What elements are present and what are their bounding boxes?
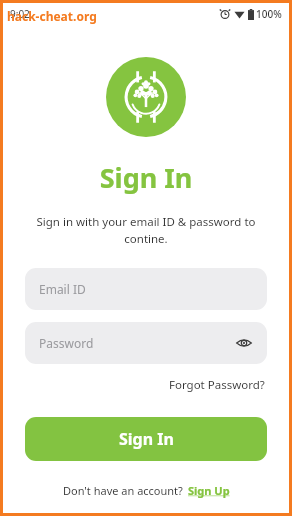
staticText: Sign In [119, 428, 174, 450]
staticText: Forgot Password? [169, 377, 265, 393]
staticText: Sign in with your email ID & password to… [29, 214, 263, 246]
staticText: hack-cheat.org [7, 8, 97, 24]
staticText: Don't have an account? [63, 483, 183, 498]
staticText: Email ID [39, 281, 86, 297]
button[interactable]: Show password [231, 330, 257, 356]
button[interactable]: Password [25, 322, 267, 364]
button[interactable]: Sign In [25, 417, 267, 461]
staticText: Sign Up [188, 483, 230, 498]
staticText: Sign In [3, 159, 289, 196]
staticText: Password [39, 335, 94, 351]
staticText: 9:02 [10, 7, 30, 21]
button[interactable]: Forgot Password? [167, 375, 267, 395]
button[interactable]: Email ID [25, 268, 267, 310]
button[interactable]: Sign Up [188, 483, 230, 498]
staticText: 100% [256, 7, 282, 21]
